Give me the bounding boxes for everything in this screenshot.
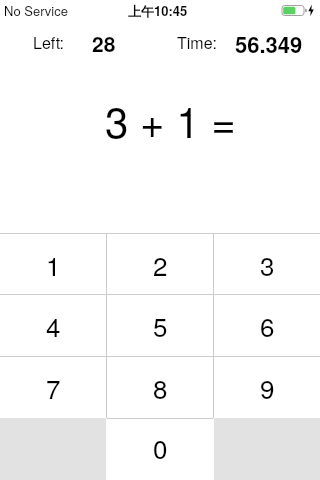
staticText: 0 xyxy=(153,429,168,466)
staticText: 2 xyxy=(153,246,168,283)
button[interactable]: 2 xyxy=(107,234,213,294)
button[interactable]: 4 xyxy=(0,295,106,356)
staticText: 上午10:45 xyxy=(128,1,188,20)
staticText: Time: xyxy=(177,31,218,54)
staticText: 5 xyxy=(153,307,168,344)
staticText: 8 xyxy=(153,369,168,406)
button[interactable]: 1 xyxy=(0,234,106,294)
staticText: 28 xyxy=(92,28,116,58)
button[interactable]: 7 xyxy=(0,357,106,418)
button[interactable]: 3 xyxy=(214,234,320,294)
staticText: Left: xyxy=(33,31,65,54)
staticText: No Service xyxy=(4,1,68,20)
staticText: 7 xyxy=(46,369,61,406)
button[interactable]: 0 xyxy=(107,419,213,480)
staticText: 3 xyxy=(260,246,275,283)
staticText: 56.349 xyxy=(235,28,303,60)
button[interactable]: 8 xyxy=(107,357,213,418)
staticText: 4 xyxy=(46,307,61,344)
staticText: 9 xyxy=(260,369,275,406)
button[interactable]: 5 xyxy=(107,295,213,356)
staticText: 3 + 1 = xyxy=(105,90,236,150)
button[interactable]: 6 xyxy=(214,295,320,356)
staticText: 6 xyxy=(260,307,275,344)
staticText: 1 xyxy=(46,246,61,283)
button[interactable]: 9 xyxy=(214,357,320,418)
